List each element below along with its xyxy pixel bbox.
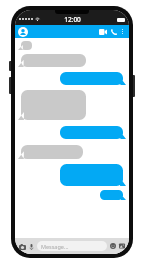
button[interactable]: Message... bbox=[37, 241, 107, 251]
button[interactable]: Gallery bbox=[118, 242, 126, 250]
button[interactable] bbox=[60, 72, 126, 85]
button[interactable] bbox=[60, 126, 126, 139]
staticText: 12:00 bbox=[64, 15, 81, 24]
button[interactable] bbox=[18, 145, 83, 159]
button[interactable]: Contact profile bbox=[18, 27, 28, 37]
button[interactable] bbox=[18, 41, 32, 50]
staticText: Message... bbox=[41, 243, 69, 250]
button[interactable] bbox=[100, 190, 126, 200]
button[interactable] bbox=[60, 164, 126, 186]
button[interactable]: Video call bbox=[97, 25, 109, 38]
button[interactable]: Emoji bbox=[109, 242, 117, 250]
button[interactable]: Microphone bbox=[28, 243, 35, 250]
button[interactable] bbox=[18, 54, 86, 67]
button[interactable]: Camera bbox=[18, 242, 27, 251]
button[interactable] bbox=[18, 90, 86, 120]
button[interactable]: More options bbox=[119, 25, 126, 38]
button[interactable]: Voice call bbox=[109, 25, 119, 38]
